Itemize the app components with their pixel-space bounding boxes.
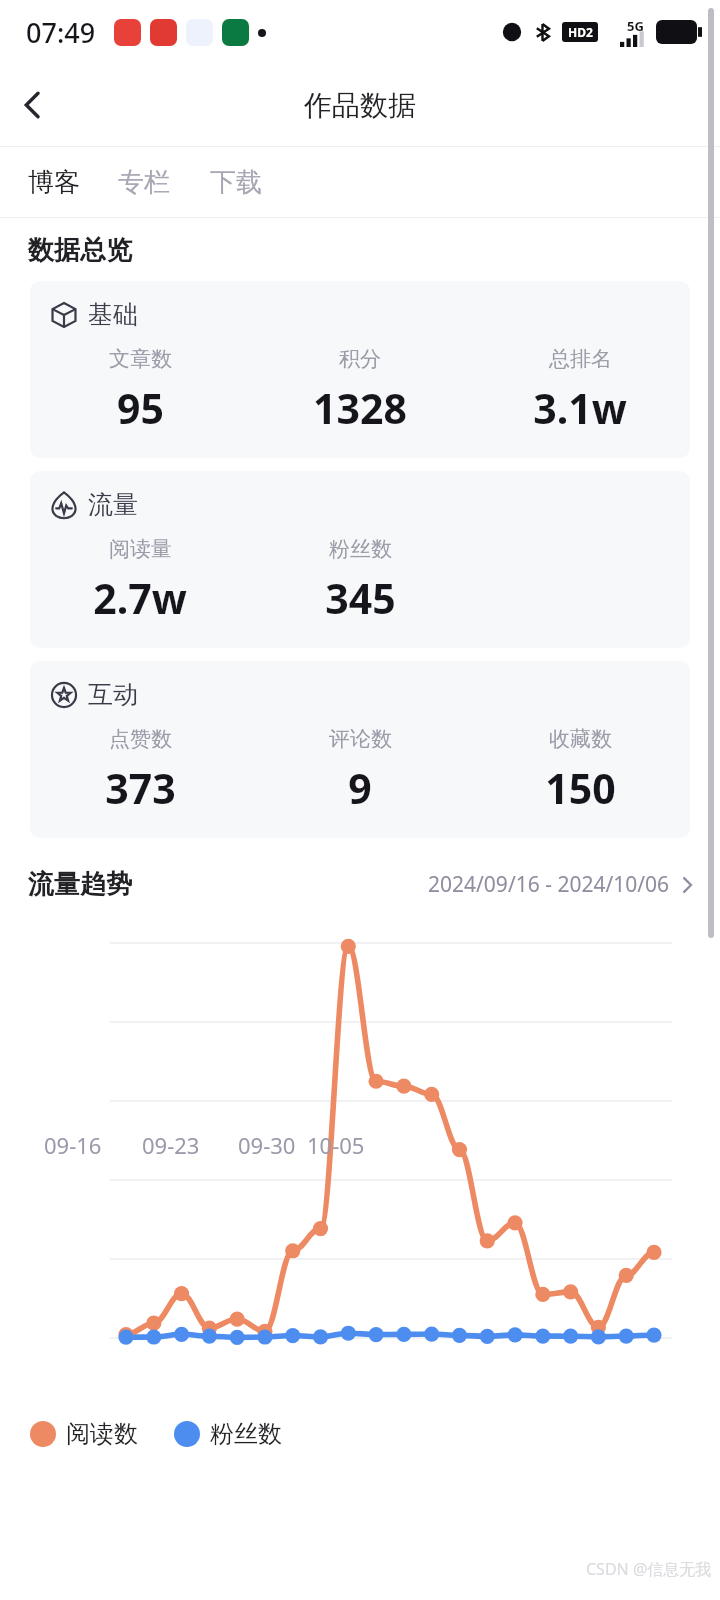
staticText: 作品数据 (304, 88, 416, 123)
staticText: CSDN @信息无我 (586, 1558, 712, 1580)
button[interactable]: 2024/09/16 - 2024/10/06 (428, 862, 696, 907)
staticText: 流量趋势 (28, 868, 132, 901)
staticText: 10-05 (307, 1130, 365, 1160)
staticText: 2.7w (93, 570, 187, 626)
button[interactable]: 流量 (30, 471, 690, 648)
staticText: 阅读数 (66, 1419, 138, 1449)
staticText: 粉丝数 (329, 536, 392, 562)
staticText: 收藏数 (549, 726, 612, 752)
staticText: 2024/09/16 - 2024/10/06 (428, 870, 670, 899)
staticText: 09-30 (238, 1130, 296, 1160)
staticText: 阅读量 (109, 536, 172, 562)
staticText: 345 (325, 570, 396, 626)
staticText: 互动 (88, 679, 138, 710)
staticText: 评论数 (329, 726, 392, 752)
button[interactable]: 下载 (208, 158, 264, 207)
button[interactable]: Back (0, 72, 66, 138)
staticText: 9 (348, 760, 372, 816)
staticText: 95 (117, 380, 164, 436)
button[interactable]: 基础 (30, 281, 690, 458)
staticText: 流量 (88, 489, 138, 520)
staticText: 09-23 (142, 1130, 200, 1160)
staticText: 总排名 (549, 346, 612, 372)
staticText: 下载 (210, 166, 262, 199)
button[interactable]: 互动 (30, 661, 690, 838)
button[interactable]: 专栏 (116, 158, 172, 207)
staticText: 基础 (88, 299, 138, 330)
staticText: 粉丝数 (210, 1419, 282, 1449)
staticText: 积分 (339, 346, 381, 372)
staticText: 点赞数 (109, 726, 172, 752)
staticText: 373 (105, 760, 176, 816)
staticText: 专栏 (118, 166, 170, 199)
staticText: 数据总览 (28, 234, 132, 267)
staticText: 09-16 (44, 1130, 102, 1160)
staticText: 1328 (313, 380, 407, 436)
staticText: 3.1w (533, 380, 627, 436)
staticText: 07:49 (26, 14, 96, 51)
staticText: 文章数 (109, 346, 172, 372)
staticText: HD2 (568, 24, 593, 40)
staticText: 5G (627, 17, 644, 35)
staticText: 博客 (28, 166, 80, 199)
button[interactable]: 博客 (26, 158, 82, 207)
staticText: 150 (545, 760, 616, 816)
